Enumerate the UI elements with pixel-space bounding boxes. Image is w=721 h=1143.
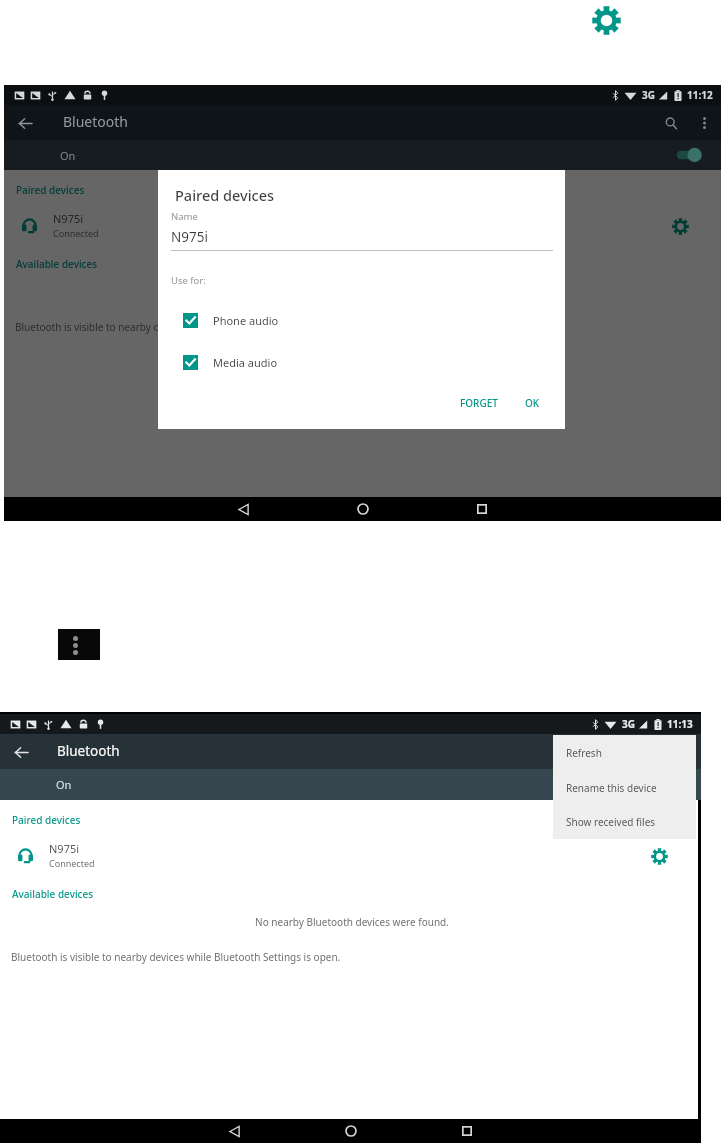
staticText: Phone audio xyxy=(213,313,279,328)
staticText: N975i xyxy=(53,211,84,226)
staticText: Bluetooth is visible to nearby devices w… xyxy=(11,950,341,964)
button[interactable]: Media audio xyxy=(158,344,565,380)
button[interactable]: Phone audio xyxy=(158,302,565,338)
staticText: FORGET xyxy=(460,396,498,410)
button[interactable]: More options xyxy=(58,629,100,660)
button[interactable]: Home xyxy=(351,497,375,521)
staticText: Paired devices xyxy=(175,185,275,205)
button[interactable]: Show received files xyxy=(553,805,696,839)
staticText: Use for: xyxy=(171,274,206,287)
button[interactable]: Bluetooth on xyxy=(675,146,703,164)
staticText: Media audio xyxy=(213,355,278,370)
button[interactable]: Settings xyxy=(592,6,621,35)
button[interactable]: Recents xyxy=(455,1119,479,1143)
button[interactable]: Device settings xyxy=(648,845,670,867)
staticText: Bluetooth xyxy=(57,742,120,760)
button[interactable]: Recents xyxy=(470,497,494,521)
staticText: On xyxy=(56,777,72,792)
button[interactable]: Navigate up xyxy=(11,109,39,137)
staticText: Paired devices xyxy=(16,183,85,197)
staticText: No nearby Bluetooth devices were found. xyxy=(7,285,721,299)
button[interactable]: Back xyxy=(231,497,255,521)
button[interactable]: Back xyxy=(222,1119,246,1143)
staticText: OK xyxy=(525,396,540,410)
button[interactable]: N975i xyxy=(4,206,721,244)
button[interactable]: OK xyxy=(519,391,546,415)
staticText: Show received files xyxy=(566,815,656,829)
button[interactable]: Device settings xyxy=(669,215,691,237)
staticText: Connected xyxy=(49,857,95,869)
staticText: Name xyxy=(171,210,198,223)
button[interactable]: FORGET xyxy=(454,391,504,415)
staticText: Paired devices xyxy=(12,813,81,827)
button[interactable]: More options xyxy=(692,111,716,135)
staticText: Rename this device xyxy=(566,781,657,795)
staticText: On xyxy=(60,148,76,163)
button[interactable]: Rename this device xyxy=(553,770,696,805)
staticText: 3G xyxy=(642,88,655,102)
staticText: No nearby Bluetooth devices were found. xyxy=(3,915,701,929)
staticText: Connected xyxy=(53,227,99,239)
button[interactable]: N975i xyxy=(0,836,698,874)
staticText: Bluetooth is visible to nearby devices w… xyxy=(15,320,345,334)
staticText: Bluetooth xyxy=(63,112,128,131)
button[interactable]: Home xyxy=(339,1119,363,1143)
staticText: 11:13 xyxy=(667,717,693,731)
staticText: N975i xyxy=(171,228,208,246)
button[interactable]: Refresh xyxy=(553,735,696,770)
button[interactable]: Navigate up xyxy=(7,738,35,766)
staticText: 3G xyxy=(622,717,635,731)
staticText: 11:12 xyxy=(687,88,713,102)
staticText: Refresh xyxy=(566,746,602,760)
staticText: Available devices xyxy=(16,257,98,271)
staticText: Available devices xyxy=(12,887,94,901)
staticText: N975i xyxy=(49,841,80,856)
button[interactable]: Search xyxy=(657,109,685,137)
